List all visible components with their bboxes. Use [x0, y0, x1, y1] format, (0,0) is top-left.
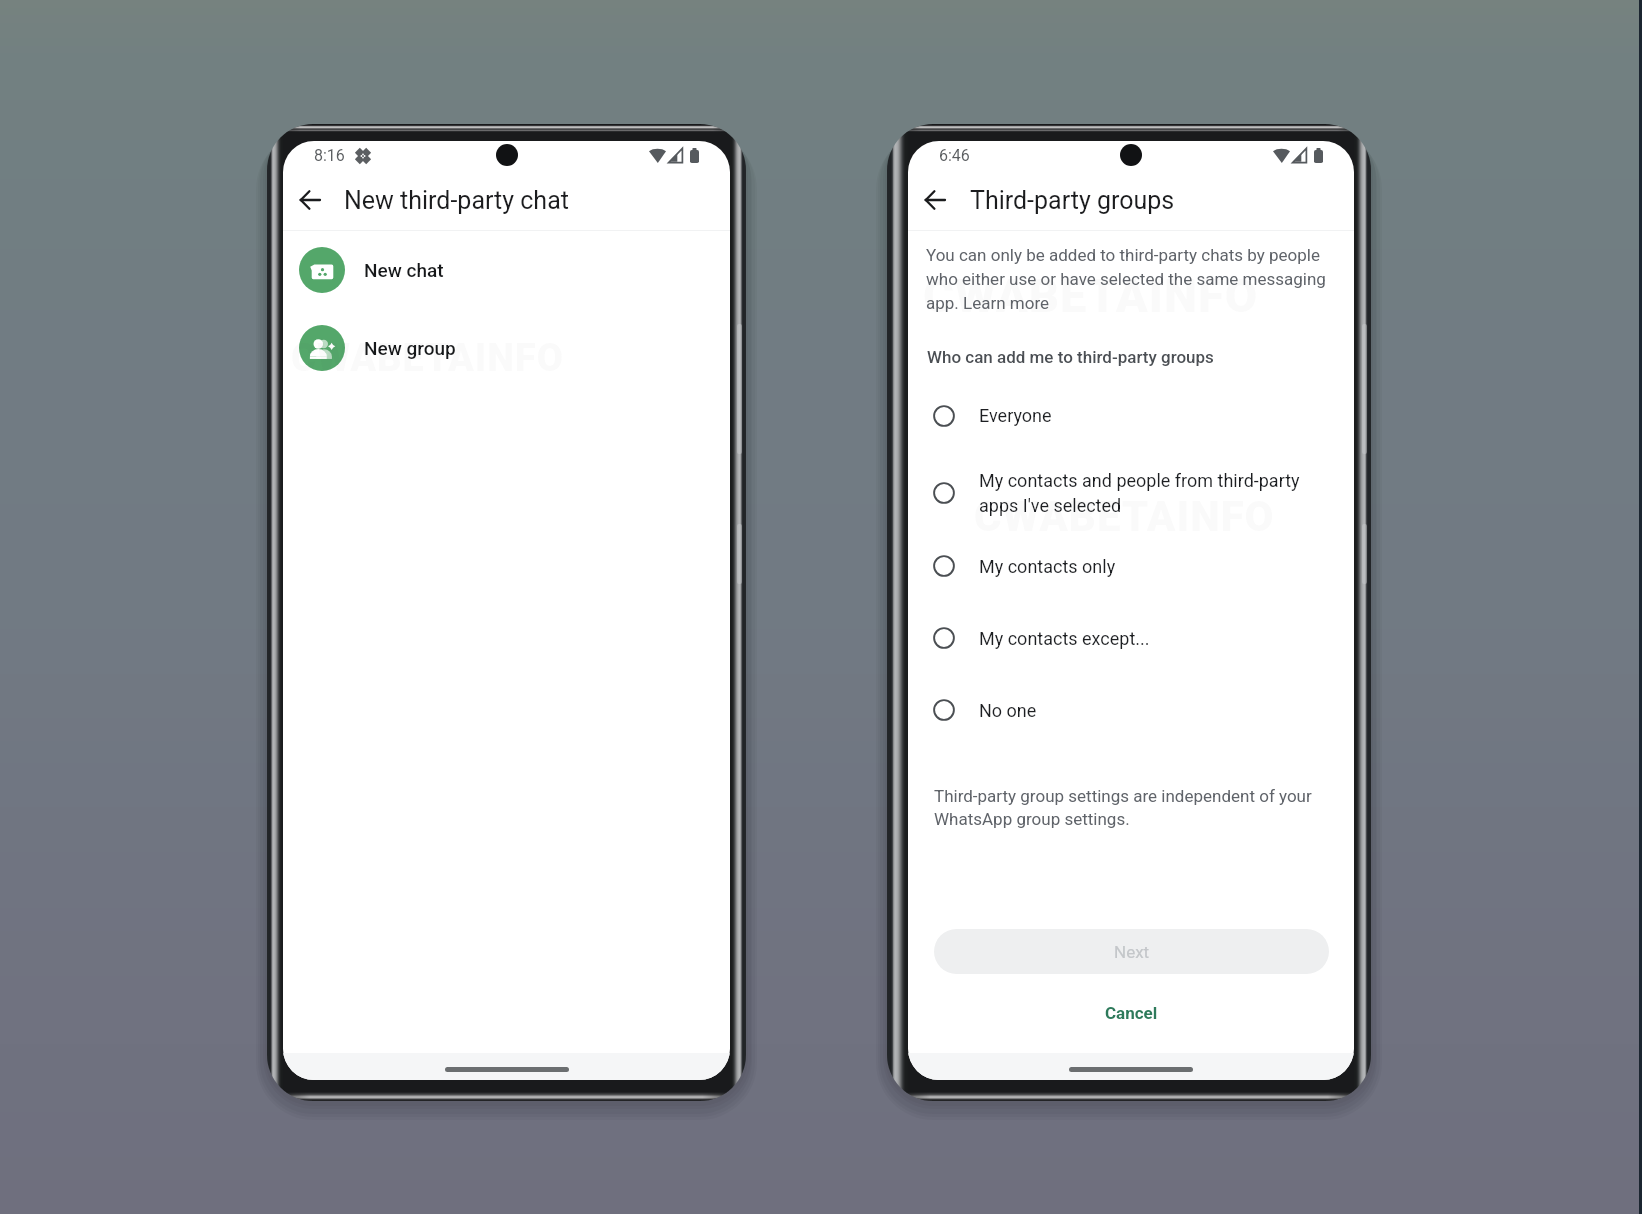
button[interactable]: New group: [283, 309, 730, 387]
staticText: CWABETAINFO: [291, 336, 565, 381]
staticText: Cancel: [1105, 1003, 1158, 1023]
staticText: My contacts and people from third-party …: [979, 470, 1325, 516]
button[interactable]: My contacts only: [908, 530, 1354, 602]
button[interactable]: No one: [908, 674, 1354, 746]
button[interactable]: Back: [290, 180, 330, 220]
staticText: My contacts only: [979, 556, 1116, 577]
staticText: 6:46: [939, 146, 970, 165]
button[interactable]: My contacts and people from third-party …: [908, 455, 1354, 530]
staticText: New group: [364, 337, 456, 359]
button[interactable]: My contacts except...: [908, 602, 1354, 674]
staticText: You can only be added to third-party cha…: [926, 245, 1330, 313]
staticText: Third-party group settings are independe…: [934, 786, 1327, 829]
staticText: No one: [979, 700, 1037, 721]
staticText: Third-party groups: [970, 186, 1175, 215]
staticText: Next: [1114, 942, 1150, 962]
button[interactable]: Everyone: [908, 376, 1354, 455]
staticText: Everyone: [979, 405, 1052, 426]
staticText: CWABETAINFO: [923, 268, 1259, 323]
staticText: 8:16: [314, 146, 345, 165]
button[interactable]: New chat: [283, 231, 730, 309]
staticText: CWABETAINFO: [974, 492, 1275, 541]
button[interactable]: Next: [934, 929, 1329, 974]
staticText: New chat: [364, 259, 444, 281]
button[interactable]: Cancel: [1058, 995, 1204, 1031]
button[interactable]: Back: [915, 180, 955, 220]
staticText: Who can add me to third-party groups: [927, 347, 1214, 367]
staticText: My contacts except...: [979, 628, 1150, 649]
staticText: New third-party chat: [344, 186, 569, 215]
